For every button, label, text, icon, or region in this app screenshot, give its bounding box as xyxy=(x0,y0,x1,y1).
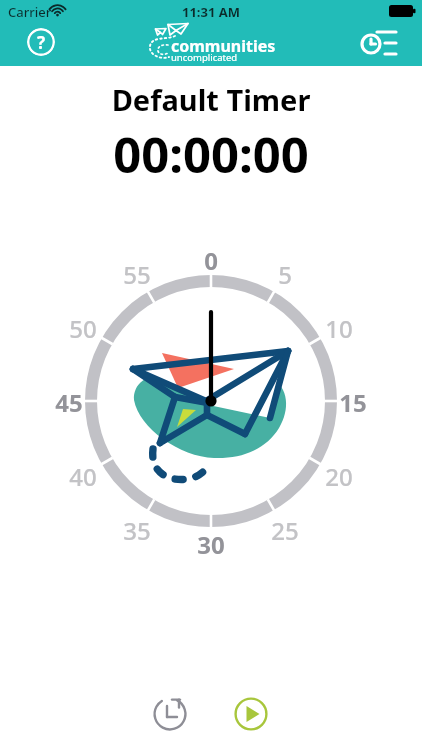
button[interactable]: Help xyxy=(27,28,55,56)
staticText: ? xyxy=(37,31,46,54)
staticText: uncomplicated xyxy=(171,51,238,64)
staticText: 55 xyxy=(123,258,151,288)
staticText: 25 xyxy=(271,514,299,544)
staticText: 10 xyxy=(325,312,353,342)
staticText: 11:31 AM xyxy=(0,3,422,21)
staticText: 40 xyxy=(69,460,97,490)
staticText: 50 xyxy=(69,312,97,342)
button[interactable]: Start xyxy=(232,695,270,733)
staticText: 20 xyxy=(325,460,353,490)
staticText: 15 xyxy=(339,386,367,416)
staticText: 5 xyxy=(278,258,292,288)
staticText: 30 xyxy=(197,528,225,558)
staticText: Default Timer xyxy=(0,80,422,119)
staticText: communities xyxy=(171,35,276,57)
staticText: Carrier xyxy=(8,3,52,21)
staticText: 0 xyxy=(204,244,218,274)
staticText: 00:00:00 xyxy=(0,121,422,188)
button[interactable]: Reset xyxy=(151,695,189,733)
button[interactable]: Timer list xyxy=(360,28,398,56)
staticText: 45 xyxy=(55,386,83,416)
staticText: 35 xyxy=(123,514,151,544)
